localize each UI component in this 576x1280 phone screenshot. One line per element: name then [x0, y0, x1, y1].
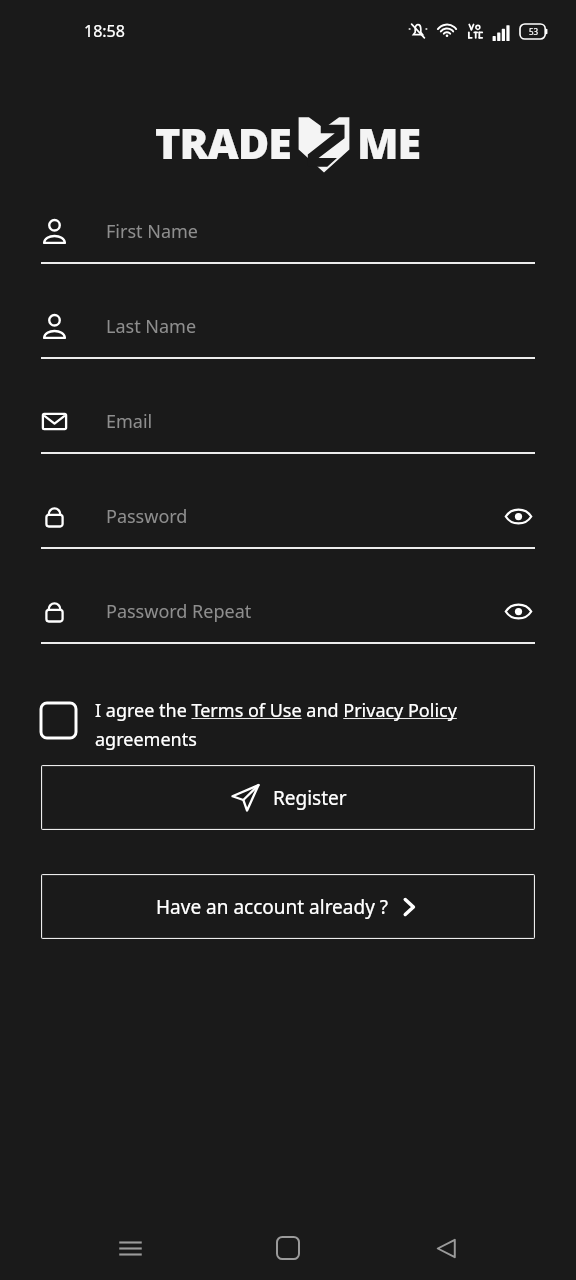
other: Agree to terms checkbox — [41, 703, 76, 738]
button[interactable]: Agree to terms checkbox — [41, 698, 535, 751]
button[interactable]: Have an account already ? — [41, 874, 535, 939]
staticText: Email — [106, 409, 153, 434]
staticText: First Name — [106, 219, 198, 244]
staticText: TRADE — [155, 113, 291, 172]
button[interactable]: Recent apps — [102, 1220, 158, 1276]
staticText: Have an account already ? — [156, 894, 389, 920]
staticText: Password Repeat — [106, 599, 252, 624]
button[interactable]: Password — [41, 485, 535, 580]
button[interactable]: Email — [41, 390, 535, 485]
staticText: 53 — [529, 26, 539, 37]
button[interactable]: Password Repeat — [41, 580, 535, 675]
staticText: ME — [357, 113, 421, 172]
staticText: Password — [106, 504, 188, 529]
staticText: I agree the Terms of Use and Privacy Pol… — [95, 698, 535, 751]
button[interactable]: First Name — [41, 200, 535, 295]
button[interactable]: Show password — [501, 499, 535, 533]
button[interactable]: Back — [418, 1220, 474, 1276]
staticText: Last Name — [106, 314, 197, 339]
staticText: Register — [273, 785, 347, 811]
button[interactable]: Show password — [501, 594, 535, 628]
button[interactable]: Last Name — [41, 295, 535, 390]
button[interactable]: Home — [260, 1220, 316, 1276]
button[interactable]: Register — [41, 765, 535, 830]
staticText: 18:58 — [84, 20, 125, 42]
